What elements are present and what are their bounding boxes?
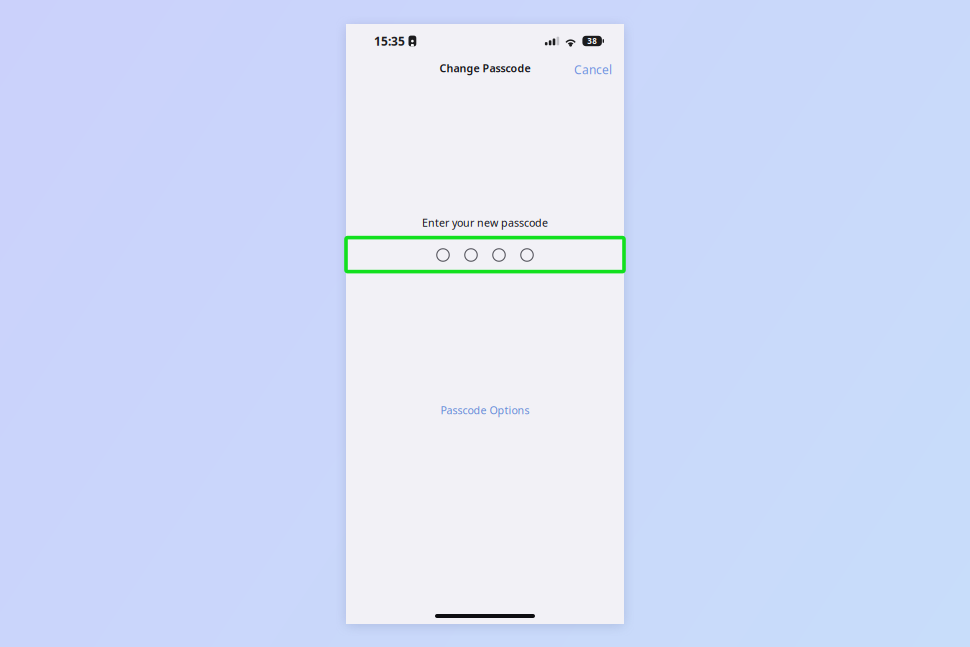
button[interactable]: Cancel	[558, 53, 624, 84]
staticText: Passcode Options	[440, 403, 529, 417]
staticText: 38	[587, 36, 597, 46]
staticText: 15:35	[374, 33, 405, 49]
staticText: Change Passcode	[439, 61, 530, 75]
button[interactable]: Passcode entry field	[346, 240, 624, 270]
staticText: Cancel	[574, 62, 612, 78]
button[interactable]: Passcode Options	[424, 396, 545, 424]
staticText: Enter your new passcode	[422, 216, 548, 230]
